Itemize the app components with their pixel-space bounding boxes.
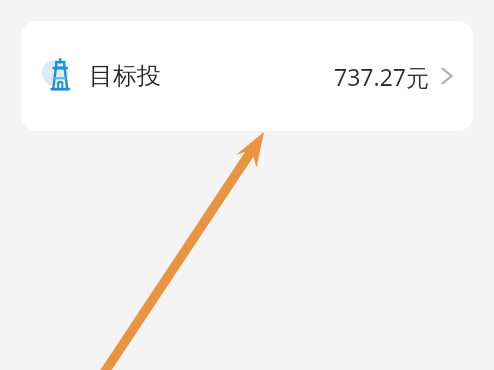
staticText: 737.27元 [334, 61, 429, 92]
button[interactable]: 目标投 [21, 21, 473, 131]
other: 查看详情 [439, 63, 455, 89]
other: 目标投 [38, 57, 76, 95]
staticText: 目标投 [89, 61, 161, 91]
